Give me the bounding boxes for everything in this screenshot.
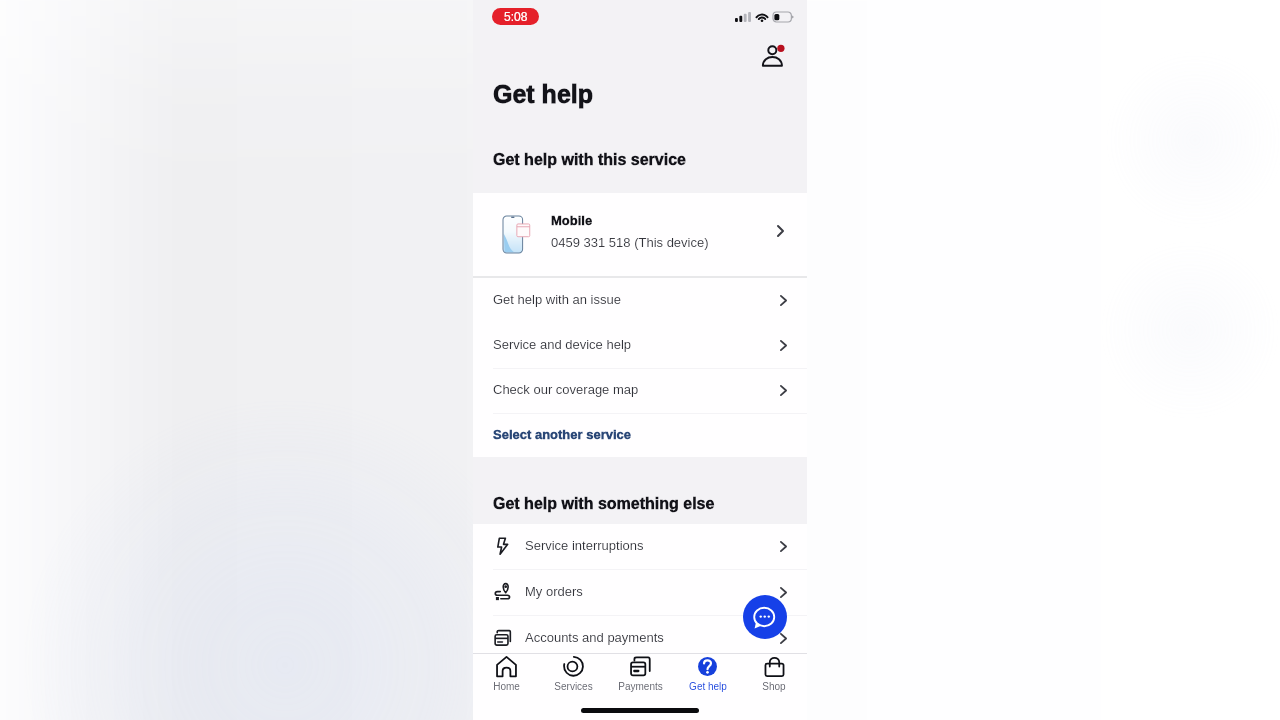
staticText: My orders	[525, 584, 583, 599]
staticText: Home	[493, 681, 520, 692]
staticText: Services	[554, 681, 593, 692]
staticText: Shop	[762, 681, 786, 692]
staticText: Payments	[618, 681, 663, 692]
button[interactable]: Service interruptions	[473, 524, 807, 569]
staticText: Service and device help	[493, 337, 632, 352]
button[interactable]: Services	[540, 653, 607, 720]
button[interactable]: Home	[473, 653, 540, 720]
staticText: Service interruptions	[525, 538, 644, 553]
button[interactable]: Get help	[674, 653, 741, 720]
button[interactable]: Get help with an issue	[473, 278, 807, 323]
staticText: Get help with something else	[493, 495, 715, 513]
button[interactable]: Mobile	[473, 193, 807, 276]
button[interactable]: Payments	[607, 653, 674, 720]
button[interactable]: Account	[757, 38, 791, 72]
staticText: Check our coverage map	[493, 382, 639, 397]
staticText: Get help with this service	[493, 151, 686, 169]
staticText: Select another service	[493, 427, 632, 442]
staticText: Get help with an issue	[493, 292, 621, 307]
button[interactable]: Accounts and payments	[473, 616, 807, 661]
button[interactable]: Select another service	[473, 413, 807, 458]
staticText: Mobile	[551, 213, 593, 228]
button[interactable]: Service and device help	[473, 323, 807, 368]
staticText: 0459 331 518 (This device)	[551, 235, 709, 250]
button[interactable]: Shop	[741, 653, 807, 720]
staticText: 5:08	[504, 10, 528, 23]
button[interactable]: My orders	[473, 570, 807, 615]
staticText: Get help	[493, 80, 594, 108]
button[interactable]: Check our coverage map	[473, 368, 807, 413]
button[interactable]: Chat with us	[743, 595, 787, 639]
staticText: Get help	[689, 681, 727, 692]
staticText: Accounts and payments	[525, 630, 664, 645]
